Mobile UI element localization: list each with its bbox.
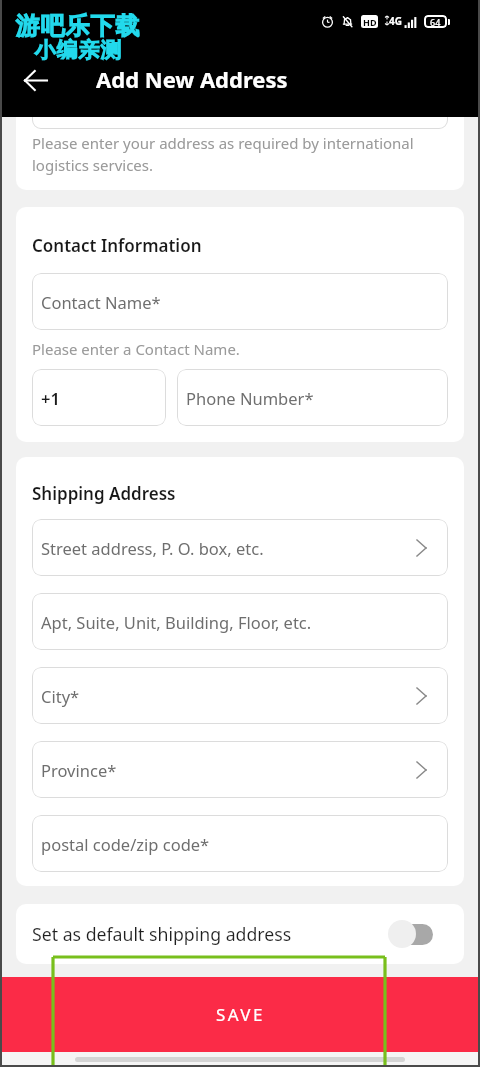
staticText: 游吧乐下载	[15, 11, 140, 41]
staticText: 小编亲测	[34, 37, 122, 63]
staticText: Set as default shipping address	[32, 922, 388, 946]
staticText: Phone Number*	[186, 387, 314, 409]
button[interactable]: Street address, P. O. box, etc.	[32, 519, 448, 576]
button[interactable]: Province*	[32, 741, 448, 798]
staticText: HD	[363, 16, 377, 28]
staticText: Contact Information	[32, 234, 202, 257]
staticText: Apt, Suite, Unit, Building, Floor, etc.	[41, 611, 312, 633]
staticText: City*	[41, 685, 80, 707]
staticText: 4G	[389, 14, 402, 28]
button[interactable]: Back	[14, 58, 58, 102]
staticText: Please enter your address as required by…	[32, 133, 414, 176]
staticText: +1	[41, 387, 60, 409]
button[interactable]: Apt, Suite, Unit, Building, Floor, etc.	[32, 593, 448, 650]
staticText: Shipping Address	[32, 482, 176, 505]
staticText: Province*	[41, 759, 117, 781]
button[interactable]: postal code/zip code*	[32, 815, 448, 872]
button[interactable]: SAVE	[0, 977, 480, 1052]
button[interactable]: Phone Number*	[177, 369, 448, 426]
staticText: postal code/zip code*	[41, 833, 210, 855]
button[interactable]: Contact Name*	[32, 273, 448, 330]
button[interactable]: City*	[32, 667, 448, 724]
staticText: Please enter a Contact Name.	[32, 339, 240, 359]
staticText: Add New Address	[96, 64, 288, 94]
staticText: Street address, P. O. box, etc.	[41, 537, 264, 559]
button[interactable]: +1	[32, 369, 166, 426]
staticText: Contact Name*	[41, 291, 161, 313]
staticText: 64	[430, 16, 441, 28]
staticText: SAVE	[216, 1003, 265, 1026]
button[interactable]: Set as default shipping address	[16, 904, 464, 964]
